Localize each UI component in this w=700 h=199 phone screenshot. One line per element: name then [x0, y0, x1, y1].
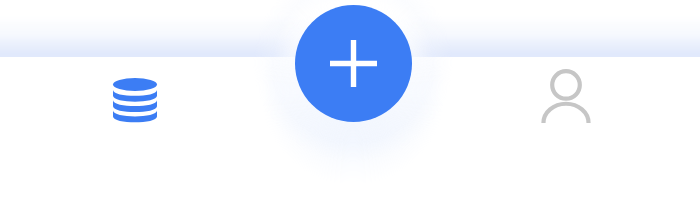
- button[interactable]: Profile: [522, 56, 612, 128]
- button[interactable]: Accounts: [93, 56, 183, 128]
- button[interactable]: Add: [295, 5, 412, 122]
